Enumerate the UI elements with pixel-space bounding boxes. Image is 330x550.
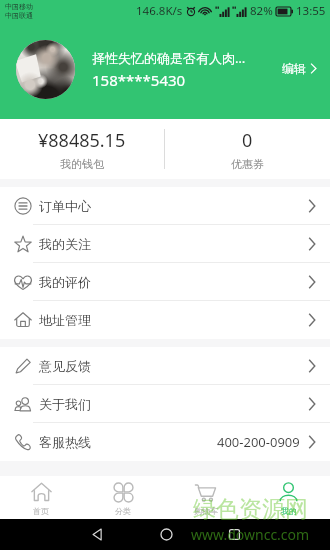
button[interactable]: 地址管理 — [0, 301, 330, 339]
staticText: 择性失忆的确是否有人肉… — [92, 49, 246, 67]
button[interactable]: 编辑 — [272, 55, 330, 82]
button[interactable]: Recent apps — [229, 529, 240, 540]
staticText: 我的 — [281, 506, 297, 516]
button[interactable]: 分类 — [82, 476, 164, 519]
button[interactable]: Home — [160, 528, 173, 541]
staticText: 158****5430 — [92, 70, 186, 90]
button[interactable]: 我的 — [247, 476, 330, 519]
staticText: 400-200-0909 — [217, 433, 300, 451]
button[interactable]: 购物车 — [164, 476, 247, 519]
staticText: 购物车 — [194, 506, 218, 516]
staticText: 订单中心 — [39, 198, 91, 214]
button[interactable]: 客服热线 — [0, 423, 330, 461]
staticText: 客服热线 — [39, 434, 91, 450]
button[interactable]: 0 — [165, 119, 330, 179]
button[interactable]: ¥88485.15 — [0, 119, 164, 179]
staticText: www.downcc.com — [191, 525, 310, 544]
staticText: 我的评价 — [39, 274, 91, 290]
button[interactable]: 首页 — [0, 476, 82, 519]
button[interactable]: 订单中心 — [0, 187, 330, 225]
staticText: 我的关注 — [39, 236, 91, 252]
staticText: 82% — [250, 3, 273, 19]
staticText: 地址管理 — [39, 312, 91, 328]
staticText: 关于我们 — [39, 396, 91, 412]
button[interactable]: 我的关注 — [0, 225, 330, 263]
staticText: 分类 — [115, 506, 131, 516]
staticText: 中国联通 — [5, 11, 33, 20]
button[interactable]: 我的评价 — [0, 263, 330, 301]
staticText: 146.8K/s — [136, 3, 183, 19]
staticText: 优惠券 — [231, 157, 264, 171]
button[interactable]: Back — [91, 528, 104, 541]
staticText: 我的钱包 — [60, 157, 104, 171]
staticText: 意见反馈 — [39, 358, 91, 374]
staticText: ¥88485.15 — [38, 128, 126, 153]
button[interactable]: 关于我们 — [0, 385, 330, 423]
staticText: 13:55 — [296, 3, 326, 19]
staticText: 首页 — [33, 506, 49, 516]
staticText: 中国移动 — [5, 2, 33, 11]
staticText: 绿色资源网 — [193, 495, 308, 524]
staticText: 0 — [242, 128, 253, 153]
staticText: 编辑 — [282, 61, 306, 76]
button[interactable]: 意见反馈 — [0, 347, 330, 385]
